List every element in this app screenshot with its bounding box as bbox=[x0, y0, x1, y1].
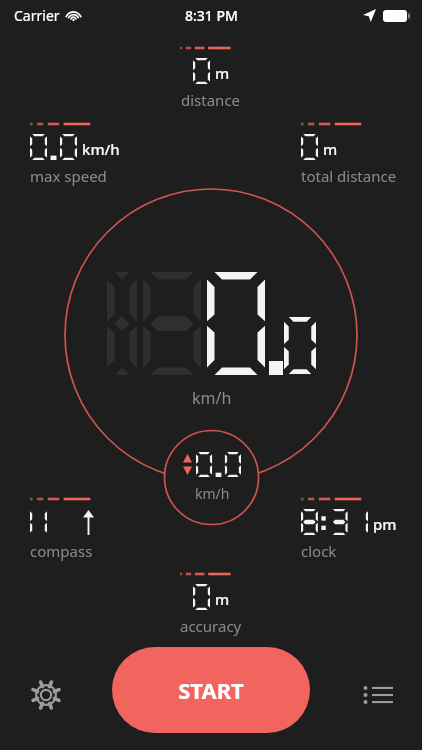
staticText: START bbox=[178, 675, 244, 705]
button[interactable]: compass bbox=[30, 497, 104, 561]
button[interactable]: History list bbox=[354, 671, 402, 719]
staticText: compass bbox=[30, 541, 93, 561]
staticText: m bbox=[215, 589, 230, 609]
staticText: total distance bbox=[301, 166, 397, 186]
staticText: km/h bbox=[195, 484, 230, 503]
button[interactable]: pm bbox=[301, 497, 397, 561]
button[interactable]: m bbox=[180, 46, 242, 110]
button[interactable]: START bbox=[112, 647, 310, 733]
button[interactable]: Settings bbox=[22, 671, 70, 719]
staticText: clock bbox=[301, 541, 337, 561]
staticText: accuracy bbox=[180, 616, 242, 636]
button[interactable]: m bbox=[180, 572, 242, 636]
staticText: m bbox=[323, 139, 338, 159]
staticText: pm bbox=[373, 514, 397, 534]
staticText: m bbox=[215, 63, 230, 83]
staticText: km/h bbox=[192, 387, 232, 409]
button[interactable]: km/h bbox=[30, 122, 120, 186]
staticText: max speed bbox=[30, 166, 107, 186]
button[interactable]: Pace bbox=[163, 429, 260, 526]
button[interactable]: m bbox=[301, 122, 397, 186]
staticText: distance bbox=[181, 90, 241, 110]
staticText: Carrier bbox=[14, 6, 60, 25]
staticText: 8:31 PM bbox=[185, 6, 238, 25]
staticText: km/h bbox=[82, 139, 120, 159]
